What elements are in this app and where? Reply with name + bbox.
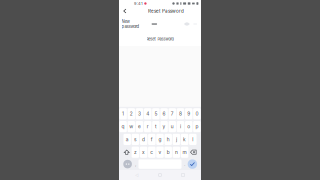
staticText: o — [187, 124, 190, 129]
staticText: q — [122, 124, 125, 129]
button[interactable]: Shift — [122, 147, 131, 158]
staticText: Reset Password — [146, 37, 173, 41]
button[interactable]: d — [140, 134, 147, 145]
staticText: . — [184, 161, 185, 167]
staticText: l — [192, 136, 193, 142]
staticText: d — [142, 136, 145, 142]
button[interactable]: u — [169, 121, 176, 132]
staticText: x — [142, 149, 145, 155]
button[interactable]: w — [127, 121, 135, 132]
button[interactable]: 1 — [119, 108, 127, 119]
staticText: u — [171, 124, 174, 129]
button[interactable]: m — [181, 147, 188, 158]
button[interactable]: j — [173, 134, 180, 145]
staticText: 8 — [179, 111, 182, 117]
button[interactable]: 0 — [193, 108, 201, 119]
staticText: 9 — [187, 111, 190, 117]
button[interactable]: x — [140, 147, 147, 158]
button[interactable]: e — [136, 121, 143, 132]
staticText: e — [138, 124, 141, 129]
staticText: n — [175, 149, 178, 155]
staticText: Reset Password — [148, 8, 184, 14]
button[interactable]: 7 — [169, 108, 176, 119]
button[interactable]: Home — [155, 170, 165, 179]
staticText: 6 — [163, 111, 166, 117]
staticText: k — [183, 136, 186, 142]
button[interactable]: s — [132, 134, 139, 145]
staticText: 7 — [171, 111, 174, 117]
button[interactable]: 5 — [152, 108, 160, 119]
staticText: y — [163, 124, 166, 129]
button[interactable]: Emoji — [123, 159, 132, 169]
button[interactable]: t — [152, 121, 160, 132]
button[interactable]: c — [148, 147, 155, 158]
button[interactable]: , — [133, 159, 137, 169]
button[interactable]: l — [189, 134, 197, 145]
button[interactable]: r — [144, 121, 151, 132]
button[interactable]: y — [160, 121, 168, 132]
button[interactable]: 9 — [185, 108, 192, 119]
button[interactable]: 6 — [160, 108, 168, 119]
button[interactable]: f — [148, 134, 156, 145]
button[interactable]: 2 — [127, 108, 135, 119]
staticText: a — [126, 136, 129, 142]
staticText: f — [151, 136, 153, 142]
staticText: t — [155, 124, 157, 129]
staticText: w — [129, 124, 133, 129]
button[interactable]: h — [164, 134, 172, 145]
button[interactable]: Enter — [188, 159, 197, 169]
staticText: New password — [122, 19, 140, 29]
staticText: p — [195, 124, 198, 129]
button[interactable]: a — [123, 134, 131, 145]
staticText: z — [134, 149, 137, 155]
button[interactable]: q — [119, 121, 127, 132]
staticText: 1 — [122, 111, 124, 117]
staticText: h — [167, 136, 170, 142]
button[interactable]: o — [185, 121, 192, 132]
button[interactable]: Backspace — [189, 147, 198, 158]
staticText: ◁ — [135, 173, 139, 177]
button[interactable]: p — [193, 121, 201, 132]
staticText — [157, 149, 163, 179]
staticText: , — [135, 161, 136, 167]
button[interactable]: z — [132, 147, 139, 158]
button[interactable]: Reset Password — [119, 35, 201, 43]
button[interactable]: n — [173, 147, 180, 158]
button[interactable]: Recents — [178, 170, 188, 179]
staticText: s — [134, 136, 137, 142]
staticText: b — [167, 149, 170, 155]
staticText: 0 — [195, 111, 198, 117]
button[interactable]: i — [177, 121, 184, 132]
staticText: 9:41 — [134, 1, 143, 6]
button[interactable]: k — [181, 134, 188, 145]
staticText: g — [158, 136, 161, 142]
button[interactable]: 4 — [144, 108, 151, 119]
staticText: c — [150, 149, 153, 155]
staticText: r — [147, 124, 149, 129]
button[interactable]: b — [164, 147, 172, 158]
button[interactable]: Back — [119, 7, 130, 15]
button[interactable]: 8 — [177, 108, 184, 119]
staticText: j — [176, 136, 177, 142]
staticText: m — [183, 149, 187, 155]
button[interactable]: g — [156, 134, 164, 145]
staticText: 3 — [138, 111, 141, 117]
staticText: i — [180, 124, 181, 129]
button[interactable]: 3 — [136, 108, 143, 119]
button[interactable]: v — [156, 147, 164, 158]
staticText: 5 — [154, 111, 157, 117]
staticText: 4 — [146, 111, 149, 117]
staticText: 2 — [130, 111, 133, 117]
staticText: v — [158, 149, 161, 155]
